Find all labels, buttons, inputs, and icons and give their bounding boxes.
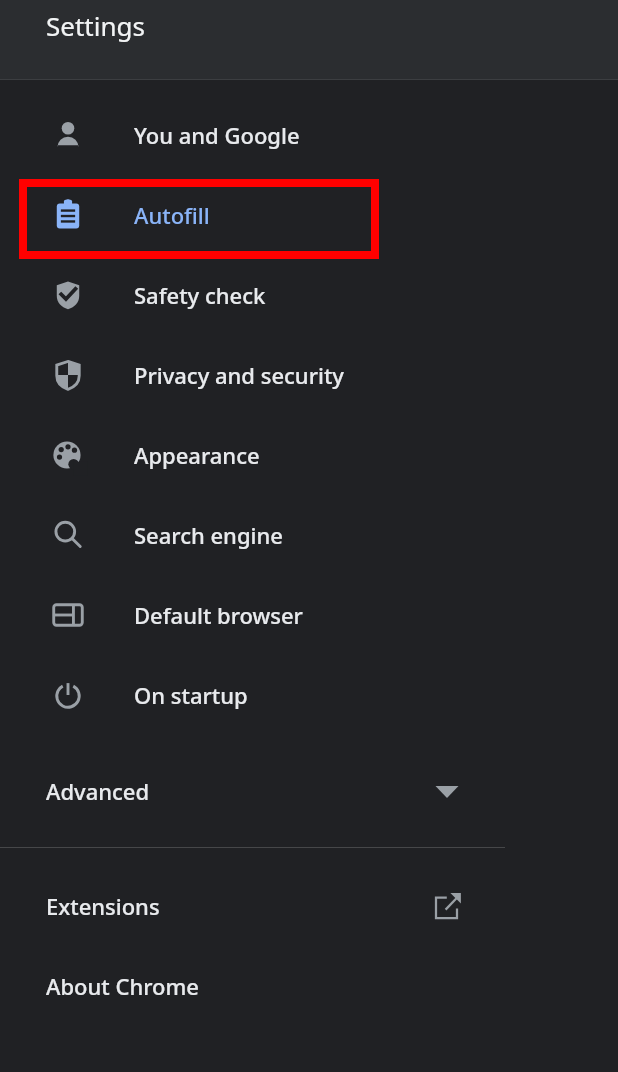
staticText: On startup [134,680,248,710]
button[interactable]: Default browser [0,575,618,655]
staticText: Default browser [134,600,303,630]
staticText: About Chrome [46,971,199,1001]
staticText: Extensions [46,891,160,921]
button[interactable]: Advanced [0,751,618,831]
staticText: Search engine [134,520,283,550]
button[interactable]: Extensions [0,866,618,946]
staticText: Appearance [134,440,260,470]
staticText: Safety check [134,280,266,310]
staticText: Autofill [134,200,210,230]
staticText: Advanced [46,776,150,806]
button[interactable]: Search engine [0,495,618,575]
button[interactable]: Appearance [0,415,618,495]
button[interactable]: On startup [0,655,618,735]
button[interactable]: Privacy and security [0,335,618,415]
button[interactable]: About Chrome [0,946,618,1026]
button[interactable]: Autofill [0,175,618,255]
button[interactable]: You and Google [0,95,618,175]
staticText: Settings [46,8,145,43]
button[interactable]: Safety check [0,255,618,335]
staticText: Privacy and security [134,360,344,390]
staticText: You and Google [134,120,300,150]
